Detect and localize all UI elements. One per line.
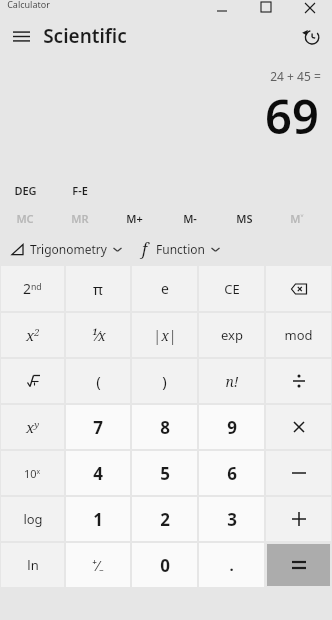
staticText: ln — [27, 556, 39, 574]
button[interactable]: π — [66, 266, 130, 311]
staticText: Function — [156, 241, 205, 257]
button[interactable]: 9 — [199, 405, 264, 449]
button[interactable]: e — [132, 266, 197, 311]
button[interactable]: M˅ — [274, 205, 320, 231]
staticText: 5 — [160, 462, 170, 485]
staticText: 69 — [265, 84, 319, 148]
button[interactable]: MS — [221, 205, 267, 231]
button[interactable]: n! — [199, 359, 264, 403]
button[interactable]: Maximize — [244, 0, 288, 13]
button[interactable]: Minimize — [200, 0, 244, 13]
staticText: |x| — [153, 326, 177, 345]
staticText: 2 — [160, 508, 170, 531]
button[interactable]: 7 — [66, 405, 130, 449]
staticText: M- — [183, 211, 197, 226]
button[interactable]: M- — [167, 205, 213, 231]
staticText: . — [229, 555, 234, 575]
staticText: Trigonometry — [30, 241, 107, 257]
staticText: 2nd — [23, 279, 42, 298]
staticText: xy — [26, 417, 40, 437]
button[interactable]: MR — [57, 205, 103, 231]
staticText: f — [142, 238, 148, 260]
button[interactable]: Trigonometry — [11, 241, 122, 257]
button[interactable]: ( — [66, 359, 130, 403]
staticText: Calculator — [7, 0, 50, 10]
button[interactable]: Menu — [3, 18, 39, 54]
button[interactable]: mod — [266, 313, 331, 357]
staticText: ⁺⁄₋ — [92, 556, 104, 575]
staticText: M+ — [126, 211, 143, 226]
staticText: MS — [236, 211, 253, 226]
button[interactable]: CE — [199, 266, 264, 311]
staticText: DEG — [14, 183, 37, 198]
staticText: n! — [225, 372, 239, 391]
staticText: 0 — [160, 554, 170, 577]
button[interactable]: 2nd — [1, 266, 64, 311]
staticText: ) — [162, 371, 167, 391]
button[interactable]: M+ — [111, 205, 157, 231]
button[interactable]: Close — [288, 0, 332, 13]
button[interactable]: Plus — [266, 497, 331, 541]
button[interactable]: f — [142, 238, 220, 260]
button[interactable]: Divide — [266, 359, 331, 403]
staticText: 9 — [227, 416, 237, 439]
button[interactable]: 0 — [132, 543, 197, 587]
button[interactable]: 3 — [199, 497, 264, 541]
button[interactable]: DEG — [14, 183, 37, 198]
staticText: MR — [71, 211, 89, 226]
staticText: 8 — [160, 416, 170, 439]
staticText: M˅ — [290, 211, 304, 226]
staticText: ¹⁄x — [91, 326, 106, 345]
button[interactable]: ) — [132, 359, 197, 403]
staticText: log — [23, 510, 43, 528]
staticText: mod — [284, 326, 313, 344]
staticText: MC — [16, 211, 34, 226]
staticText: 6 — [227, 462, 237, 485]
button[interactable]: x2 — [1, 313, 64, 357]
button[interactable]: 4 — [66, 451, 130, 495]
staticText: ( — [96, 371, 101, 391]
button[interactable]: . — [199, 543, 264, 587]
button[interactable]: F-E — [72, 183, 88, 198]
staticText: π — [93, 279, 103, 299]
button[interactable]: ⁺⁄₋ — [66, 543, 130, 587]
button[interactable]: Cube root — [1, 359, 64, 403]
staticText: 10x — [24, 466, 41, 481]
staticText: x2 — [26, 325, 40, 345]
staticText: 3 — [227, 508, 237, 531]
staticText: 4 — [93, 462, 103, 485]
button[interactable]: |x| — [132, 313, 197, 357]
button[interactable]: Backspace — [266, 266, 331, 311]
button[interactable]: exp — [199, 313, 264, 357]
button[interactable]: MC — [2, 205, 48, 231]
button[interactable]: Multiply — [266, 405, 331, 449]
button[interactable]: History — [294, 19, 328, 53]
staticText: 7 — [93, 416, 103, 439]
button[interactable]: 2 — [132, 497, 197, 541]
button[interactable]: xy — [1, 405, 64, 449]
staticText: e — [161, 279, 169, 298]
button[interactable]: 10x — [1, 451, 64, 495]
staticText: exp — [221, 326, 243, 344]
button[interactable]: 8 — [132, 405, 197, 449]
button[interactable]: log — [1, 497, 64, 541]
button[interactable]: Minus — [266, 451, 331, 495]
button[interactable]: 5 — [132, 451, 197, 495]
button[interactable]: 1 — [66, 497, 130, 541]
button[interactable]: 6 — [199, 451, 264, 495]
button[interactable]: ln — [1, 543, 64, 587]
button[interactable]: Equals — [267, 544, 330, 586]
staticText: Scientific — [43, 23, 127, 49]
button[interactable]: ¹⁄x — [66, 313, 130, 357]
staticText: 1 — [93, 508, 103, 531]
staticText: CE — [224, 280, 240, 298]
staticText: F-E — [72, 183, 88, 198]
staticText: 24 + 45 = — [270, 68, 321, 84]
